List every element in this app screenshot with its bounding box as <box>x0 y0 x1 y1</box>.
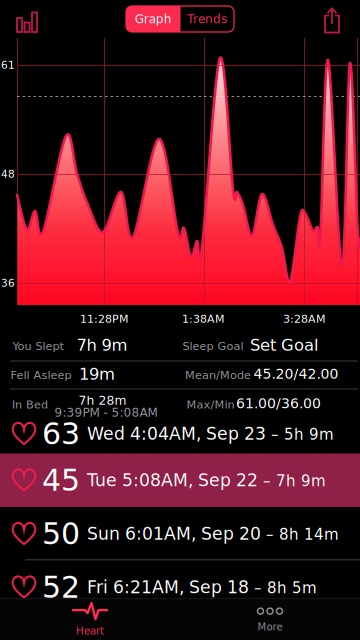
staticText: Mean/Mode <box>185 368 251 381</box>
staticText: 7h 9m <box>76 335 127 355</box>
staticText: 61 <box>1 59 15 71</box>
staticText: More <box>257 621 282 633</box>
staticText: 45.20/42.00 <box>253 366 338 382</box>
staticText: Set Goal <box>250 335 319 355</box>
staticText: 48 <box>1 168 15 180</box>
staticText: Graph <box>135 12 172 26</box>
staticText: Sun 6:01AM, Sep 20 – 8h 14m <box>87 524 339 543</box>
staticText: 50 <box>42 516 80 551</box>
staticText: You Slept <box>12 339 63 352</box>
staticText: 61.00/36.00 <box>236 395 321 412</box>
staticText: 36 <box>1 277 15 289</box>
staticText: Sleep Goal <box>182 339 243 352</box>
staticText: Max/Min <box>186 398 234 411</box>
button[interactable]: Heart <box>0 598 180 640</box>
staticText: In Bed <box>12 398 48 411</box>
staticText: Fri 6:21AM, Sep 18 – 8h 5m <box>87 577 317 597</box>
button[interactable]: History <box>0 4 37 32</box>
button[interactable]: More <box>180 598 360 640</box>
button[interactable]: 52 <box>0 560 360 614</box>
button[interactable]: 63 <box>0 420 360 453</box>
staticText: 3:28AM <box>283 313 325 325</box>
staticText: 45 <box>42 463 80 498</box>
staticText: Trends <box>187 12 227 26</box>
button[interactable]: Share <box>325 3 360 32</box>
button[interactable]: 50 <box>0 507 360 560</box>
staticText: 63 <box>42 416 80 451</box>
button[interactable]: 45 <box>0 453 360 507</box>
staticText: 11:28PM <box>80 313 128 325</box>
staticText: 1:38AM <box>182 313 224 325</box>
staticText: Tue 5:08AM, Sep 22 – 7h 9m <box>87 470 326 490</box>
staticText: Heart <box>76 625 104 637</box>
staticText: Wed 4:04AM, Sep 23 – 5h 9m <box>87 424 334 443</box>
button[interactable]: Trends <box>180 6 234 32</box>
button[interactable]: Graph <box>126 6 180 32</box>
button[interactable]: Set Goal <box>250 335 319 355</box>
staticText: 52 <box>42 570 80 605</box>
staticText: Fell Asleep <box>10 368 71 381</box>
staticText: 9:39PM - 5:08AM <box>54 405 157 419</box>
staticText: 19m <box>79 364 115 384</box>
staticText: 7h 28m <box>78 393 126 408</box>
